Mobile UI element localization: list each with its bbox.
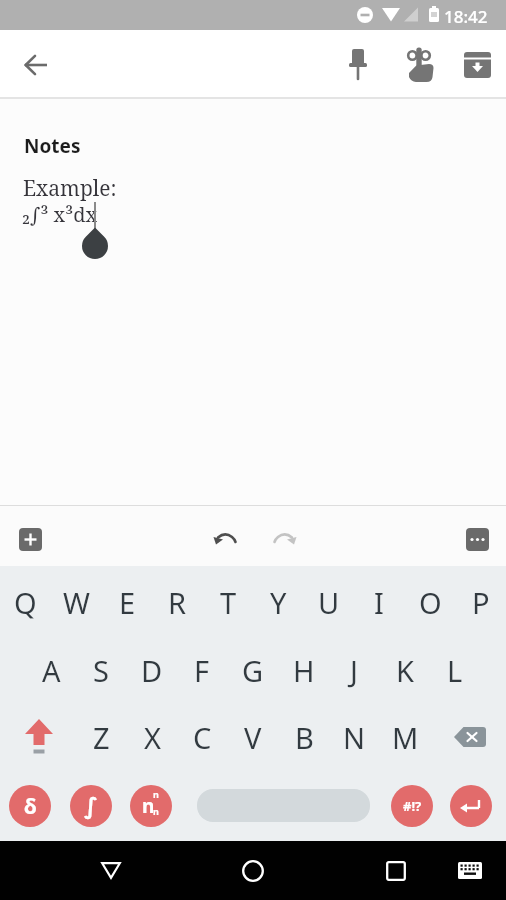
button[interactable]: O xyxy=(405,569,455,635)
staticText: N xyxy=(343,718,366,757)
staticText: δ xyxy=(24,792,37,821)
staticText: W xyxy=(63,583,90,622)
button[interactable]: D xyxy=(127,637,177,703)
staticText: J xyxy=(350,651,358,690)
button[interactable]: ∫ xyxy=(70,785,112,827)
button[interactable] xyxy=(225,841,281,900)
button[interactable]: L xyxy=(430,637,480,703)
staticText: Y xyxy=(270,583,287,622)
staticText: S xyxy=(93,651,109,690)
button[interactable] xyxy=(83,841,139,900)
staticText: n xyxy=(153,788,159,800)
button[interactable]: K xyxy=(380,637,430,703)
staticText: M xyxy=(392,718,419,757)
button[interactable] xyxy=(197,789,370,822)
staticText: U xyxy=(318,583,340,622)
staticText: ₂∫³ x³dx xyxy=(22,201,98,228)
staticText: Example: xyxy=(23,174,117,203)
button[interactable]: F xyxy=(177,637,227,703)
staticText: H xyxy=(293,651,315,690)
button[interactable] xyxy=(13,711,65,763)
button[interactable]: W xyxy=(51,569,101,635)
staticText: I xyxy=(374,583,384,622)
staticText: O xyxy=(419,583,442,622)
staticText: ∫ xyxy=(84,793,99,820)
button[interactable]: E xyxy=(102,569,152,635)
staticText: Z xyxy=(93,718,110,757)
staticText: R xyxy=(168,583,187,622)
staticText: T xyxy=(220,583,237,622)
button[interactable]: J xyxy=(329,637,379,703)
button[interactable] xyxy=(455,519,499,559)
staticText: F xyxy=(194,651,210,690)
button[interactable]: R xyxy=(152,569,202,635)
staticText: n xyxy=(142,793,155,819)
staticText: #!? xyxy=(403,797,422,815)
button[interactable]: N xyxy=(329,704,379,770)
button[interactable]: S xyxy=(76,637,126,703)
staticText: P xyxy=(472,583,490,622)
button[interactable]: A xyxy=(26,637,76,703)
staticText: V xyxy=(244,718,262,757)
staticText: Notes xyxy=(24,133,81,159)
staticText: X xyxy=(144,718,161,757)
staticText: G xyxy=(242,651,264,690)
button[interactable]: Q xyxy=(0,569,50,635)
button[interactable] xyxy=(398,30,442,99)
button[interactable]: V xyxy=(228,704,278,770)
button[interactable] xyxy=(263,519,307,559)
button[interactable] xyxy=(336,30,380,99)
button[interactable] xyxy=(444,711,496,763)
staticText: Q xyxy=(14,583,37,622)
button[interactable] xyxy=(448,841,492,900)
staticText: K xyxy=(396,651,414,690)
staticText: B xyxy=(295,718,314,757)
button[interactable]: n xyxy=(130,785,172,827)
button[interactable]: X xyxy=(127,704,177,770)
staticText: E xyxy=(119,583,136,622)
button[interactable]: I xyxy=(354,569,404,635)
button[interactable] xyxy=(450,785,492,827)
button[interactable]: H xyxy=(279,637,329,703)
button[interactable] xyxy=(203,519,247,559)
staticText: C xyxy=(193,718,212,757)
button[interactable]: Z xyxy=(76,704,126,770)
button[interactable]: C xyxy=(177,704,227,770)
button[interactable] xyxy=(8,30,64,99)
button[interactable]: δ xyxy=(9,785,51,827)
button[interactable]: T xyxy=(203,569,253,635)
button[interactable] xyxy=(455,30,499,99)
button[interactable]: M xyxy=(380,704,430,770)
staticText: A xyxy=(42,651,61,690)
button[interactable]: P xyxy=(456,569,506,635)
button[interactable]: U xyxy=(304,569,354,635)
button[interactable]: #!? xyxy=(391,785,433,827)
staticText: D xyxy=(141,651,163,690)
button[interactable]: G xyxy=(228,637,278,703)
staticText: n xyxy=(153,805,159,817)
button[interactable] xyxy=(368,841,424,900)
button[interactable]: Notes xyxy=(0,101,506,505)
button[interactable]: Y xyxy=(253,569,303,635)
button[interactable] xyxy=(8,519,52,559)
button[interactable]: B xyxy=(279,704,329,770)
staticText: L xyxy=(447,651,463,690)
staticText: 18:42 xyxy=(444,5,488,28)
